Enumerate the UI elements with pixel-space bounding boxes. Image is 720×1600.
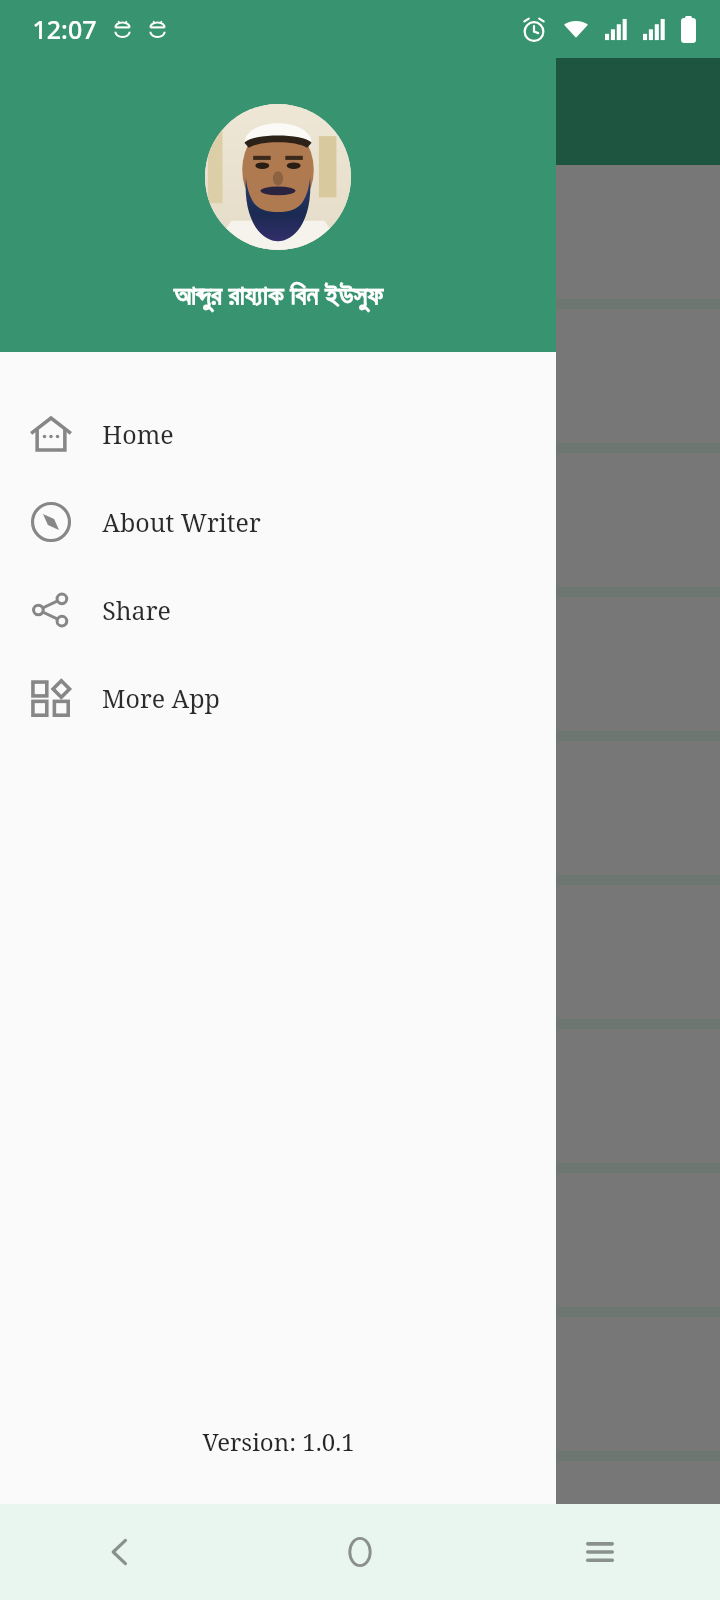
button[interactable]: Home (240, 1504, 480, 1600)
button[interactable]: Back (0, 1504, 240, 1600)
button[interactable]: More App (0, 654, 556, 742)
staticText: About Writer (102, 505, 261, 539)
button[interactable]: Recent apps (480, 1504, 720, 1600)
staticText: More App (102, 681, 220, 715)
button[interactable]: Share (0, 566, 556, 654)
staticText: Version: 1.0.1 (202, 1425, 355, 1458)
staticText: আব্দুর রায্যাক বিন ইউসুফ (173, 276, 383, 313)
staticText: Share (102, 593, 171, 627)
button[interactable]: Home (0, 390, 556, 478)
button[interactable]: About Writer (0, 478, 556, 566)
staticText: Home (102, 417, 174, 451)
staticText: 12:07 (32, 12, 97, 46)
